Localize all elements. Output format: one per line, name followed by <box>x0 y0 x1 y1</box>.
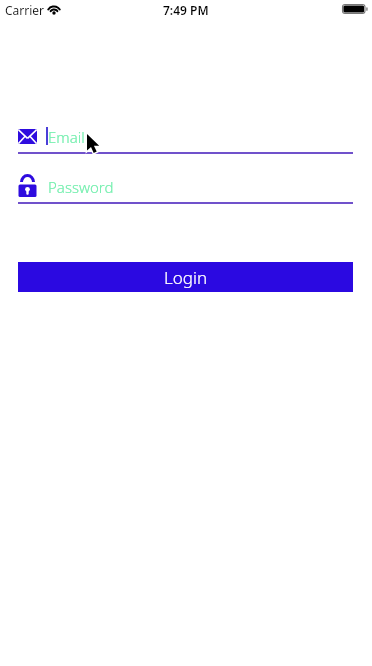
staticText: Email <box>48 127 85 147</box>
button[interactable]: Email <box>10 122 353 154</box>
button[interactable]: Login <box>18 262 353 292</box>
staticText: Password <box>48 177 114 197</box>
staticText: Login <box>164 266 208 289</box>
button[interactable]: Password <box>10 172 353 202</box>
staticText: Carrier <box>5 2 45 18</box>
staticText: 7:49 PM <box>163 2 209 18</box>
